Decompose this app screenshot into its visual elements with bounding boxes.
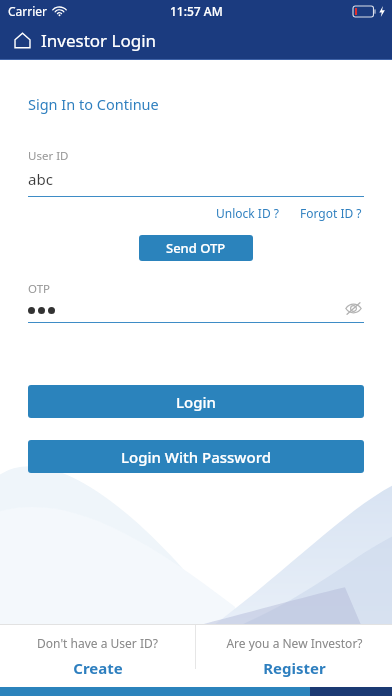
staticText: Register: [263, 658, 326, 678]
staticText: Don't have a User ID?: [37, 635, 158, 651]
button[interactable]: Forgot ID ?: [298, 203, 364, 223]
staticText: Are you a New Investor?: [226, 635, 363, 651]
staticText: Carrier: [8, 3, 48, 19]
staticText: Sign In to Continue: [28, 94, 159, 114]
button[interactable]: Login: [28, 385, 364, 418]
staticText: Login: [176, 392, 216, 412]
button[interactable]: Are you a New Investor?: [196, 625, 392, 687]
staticText: Unlock ID ?: [216, 205, 279, 221]
button[interactable]: Send OTP: [139, 235, 253, 261]
staticText: abc: [28, 169, 53, 189]
staticText: Send OTP: [166, 239, 226, 257]
staticText: OTP: [28, 281, 50, 297]
staticText: 11:57 AM: [170, 3, 223, 19]
button[interactable]: Login With Password: [28, 440, 364, 473]
staticText: Forgot ID ?: [300, 205, 362, 221]
button[interactable]: Unlock ID ?: [214, 203, 281, 223]
staticText: Login With Password: [121, 447, 271, 467]
staticText: Create: [73, 658, 123, 678]
staticText: User ID: [28, 148, 69, 164]
button[interactable]: Don't have a User ID?: [0, 625, 195, 687]
staticText: Investor Login: [41, 29, 157, 52]
button[interactable]: Home: [0, 26, 41, 55]
button[interactable]: Show OTP: [343, 300, 364, 317]
